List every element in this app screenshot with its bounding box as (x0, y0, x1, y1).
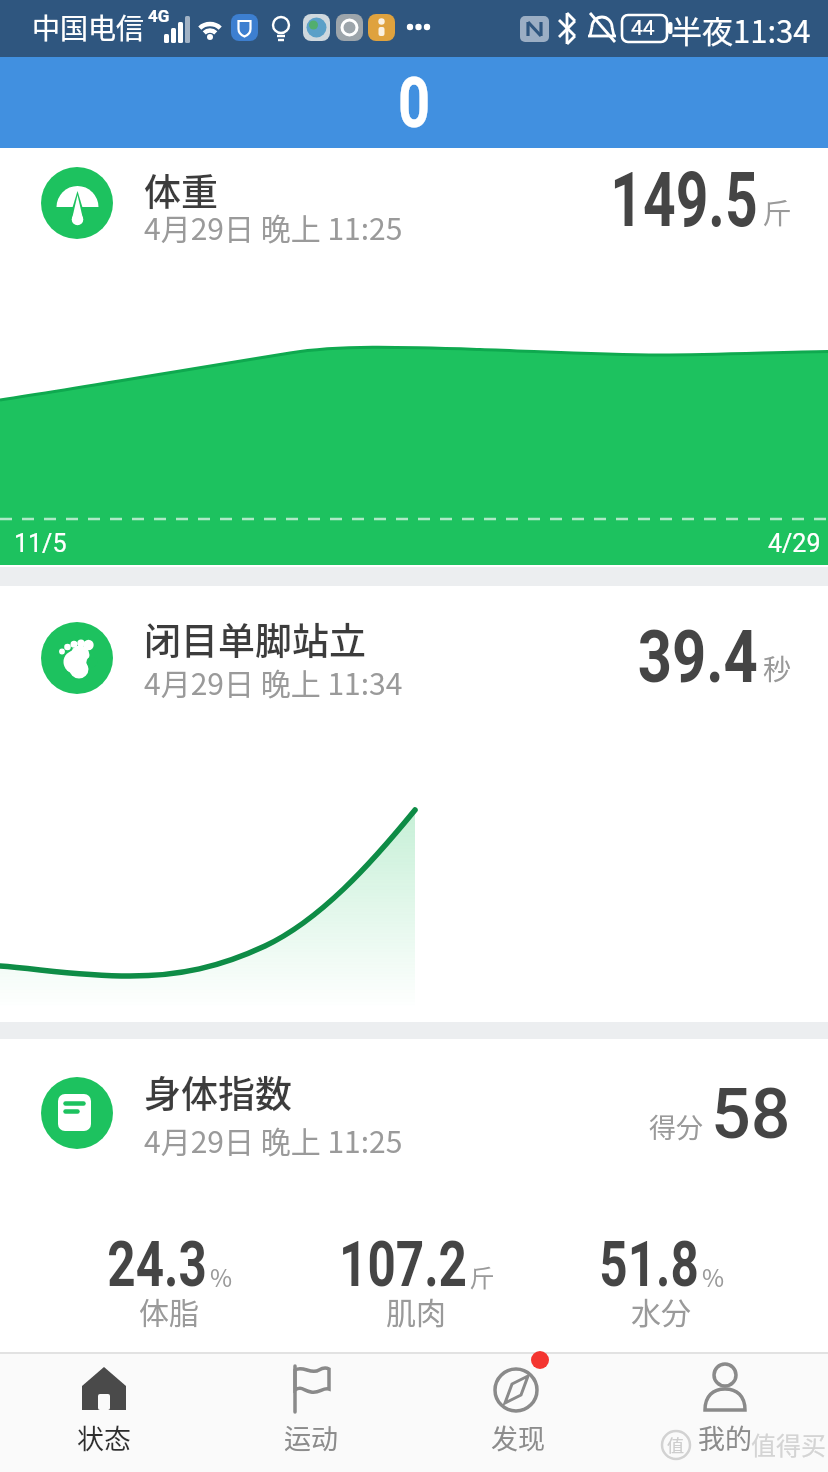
button[interactable]: 身体指数 (0, 1039, 828, 1352)
staticText: 状态 (77, 1418, 131, 1457)
staticText: 斤 (470, 1259, 494, 1294)
staticText: % (702, 1259, 725, 1294)
button[interactable]: 状态 (0, 1352, 207, 1472)
staticText: 秒 (763, 648, 792, 689)
staticText: 107.2 (339, 1228, 467, 1302)
staticText: 发现 (491, 1418, 545, 1457)
staticText: 4月29日 晚上 11:34 (144, 660, 403, 703)
staticText: 149.5 (610, 155, 758, 244)
staticText: 闭目单脚站立 (144, 612, 366, 666)
staticText: 斤 (763, 192, 792, 233)
staticText: 体脂 (139, 1289, 199, 1332)
staticText: 水分 (631, 1289, 691, 1332)
staticText: 肌肉 (386, 1289, 446, 1332)
staticText: 44 (631, 16, 655, 41)
button[interactable]: 闭目单脚站立 (0, 586, 828, 1022)
staticText: 11/5 (14, 529, 67, 558)
staticText: 得分 (649, 1107, 703, 1146)
button[interactable]: 体重 (0, 148, 828, 567)
staticText: 我的 (698, 1418, 752, 1457)
staticText: 4/29 (768, 529, 821, 558)
staticText: 39.4 (638, 615, 758, 699)
staticText: 值 (667, 1432, 684, 1457)
staticText: 4G (148, 6, 170, 26)
staticText: 身体指数 (144, 1065, 292, 1119)
button[interactable]: 发现 (414, 1352, 621, 1472)
staticText: 中国电信 (32, 7, 145, 48)
staticText: 0 (398, 62, 431, 144)
staticText: 4月29日 晚上 11:25 (144, 1118, 403, 1161)
staticText: 半夜11:34 (671, 7, 811, 52)
button[interactable]: 我的 (621, 1352, 828, 1472)
staticText: 58 (711, 1073, 791, 1155)
staticText: 24.3 (107, 1228, 207, 1302)
staticText: 运动 (284, 1418, 338, 1457)
button[interactable]: 运动 (207, 1352, 414, 1472)
staticText: 51.8 (599, 1228, 699, 1302)
staticText: 4月29日 晚上 11:25 (144, 205, 403, 248)
staticText: 值得买 (751, 1426, 827, 1462)
staticText: % (210, 1259, 233, 1294)
staticText: 体重 (144, 163, 218, 217)
